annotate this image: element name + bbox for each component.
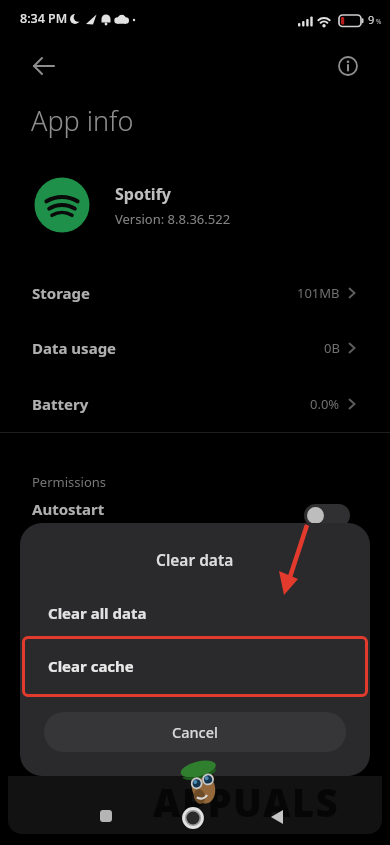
button[interactable]: [100, 810, 112, 822]
button[interactable]: Clear cache: [20, 640, 370, 692]
staticText: Version: 8.8.36.522: [115, 210, 231, 228]
staticText: Clear cache: [48, 656, 134, 676]
staticText: App info: [31, 102, 134, 139]
staticText: APPUALS: [153, 776, 340, 828]
staticText: %: [376, 17, 382, 26]
button[interactable]: [182, 807, 204, 829]
button[interactable]: Data usage: [0, 320, 390, 375]
staticText: Data usage: [32, 338, 117, 358]
staticText: Storage: [32, 283, 90, 303]
staticText: Autostart: [32, 499, 105, 519]
staticText: 9: [368, 12, 375, 27]
button[interactable]: Storage: [0, 265, 390, 320]
staticText: 0.0%: [310, 395, 340, 413]
button[interactable]: Cancel: [44, 712, 346, 752]
staticText: Clear data: [156, 549, 234, 570]
button[interactable]: Clear all data: [20, 587, 370, 639]
button[interactable]: Battery: [0, 376, 390, 431]
staticText: Permissions: [32, 473, 107, 491]
button[interactable]: [338, 56, 358, 76]
button[interactable]: [32, 54, 56, 78]
button[interactable]: [268, 808, 286, 826]
staticText: 101MB: [297, 284, 340, 302]
staticText: Cancel: [172, 722, 218, 742]
staticText: 0B: [324, 339, 340, 357]
staticText: 8:34 PM: [20, 10, 68, 27]
button[interactable]: [304, 504, 350, 527]
staticText: Clear all data: [48, 603, 147, 623]
staticText: Battery: [32, 394, 89, 414]
staticText: Spotify: [115, 183, 171, 205]
